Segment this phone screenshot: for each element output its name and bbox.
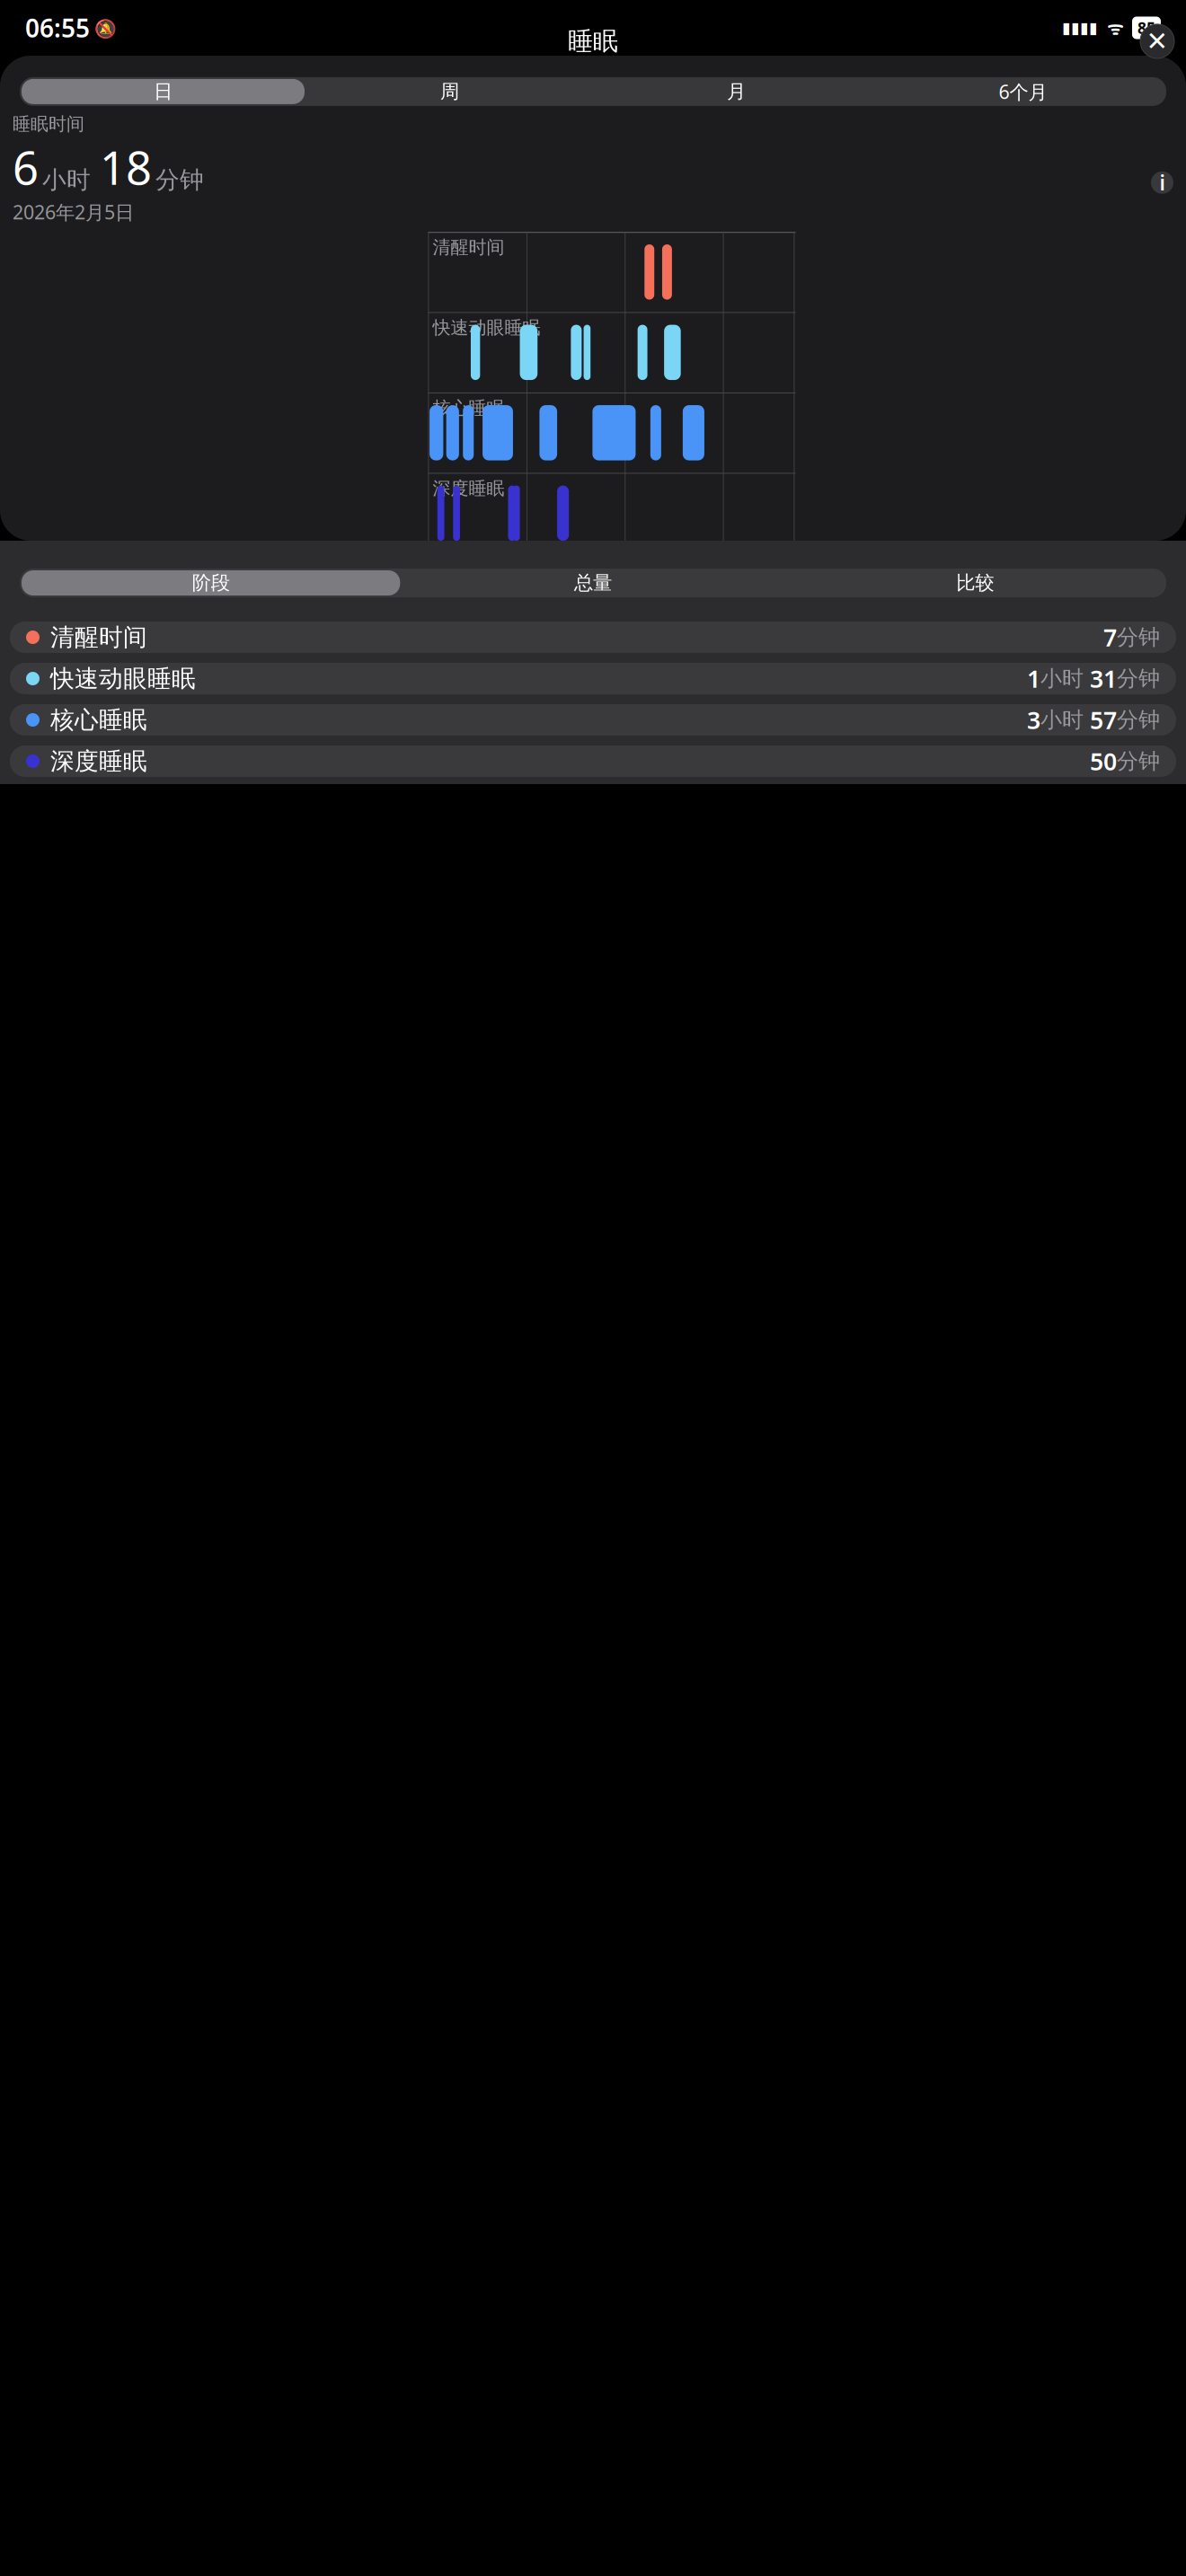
staticText: 6 [13,137,39,197]
staticText: 50 [1090,745,1117,777]
button[interactable]: 周 [306,77,593,106]
staticText: 3 [1027,704,1040,736]
staticText: 月 [727,80,746,103]
staticText: 清醒时间 [50,623,147,652]
staticText: 快速动眼睡眠 [433,317,540,339]
staticText: 比较 [956,571,994,595]
staticText: 深度睡眠 [50,746,147,776]
button[interactable]: 信息 [1151,171,1173,194]
staticText: 分钟 [155,165,204,195]
staticText: 06:55 [25,11,90,45]
staticText: 分钟 [1117,624,1160,651]
staticText: 阶段 [192,571,230,595]
staticText: 睡眠时间 [13,113,84,135]
button[interactable]: 月 [593,77,880,106]
staticText: 核心睡眠 [50,705,147,735]
button[interactable]: 深度睡眠 [10,745,1176,777]
staticText: i [1159,169,1165,196]
staticText: 6个月 [999,79,1047,104]
staticText: 清醒时间 [433,236,504,258]
staticText: 日 [154,80,173,103]
staticText: 小时 [1040,707,1090,733]
staticText: 2026年2月5日 [13,199,134,225]
staticText: 1 [1027,663,1040,694]
staticText: 02:00 [120,555,169,580]
staticText: 睡眠 [568,26,618,57]
staticText: 31 [1090,663,1117,694]
button[interactable]: 关闭 [1140,24,1174,58]
staticText: ✕ [1146,26,1168,56]
staticText: 06:00 [316,555,365,580]
button[interactable]: 总量 [402,569,784,597]
button[interactable]: 6个月 [880,77,1166,106]
staticText: 核心睡眠 [433,397,504,419]
button[interactable]: 阶段 [20,569,402,597]
staticText: 分钟 [1117,748,1160,775]
staticText: 快速动眼睡眠 [50,664,196,693]
button[interactable]: 快速动眼睡眠 [10,663,1176,694]
staticText: 04:00 [218,555,267,580]
staticText: 00:00 [22,555,71,580]
staticText: 深度睡眠 [433,477,504,500]
button[interactable]: 清醒时间 [10,622,1176,653]
staticText: 57 [1090,704,1117,736]
staticText: 周 [440,80,459,103]
staticText: ᯤ [1098,16,1132,40]
staticText: 分钟 [1117,665,1160,692]
staticText: 7 [1103,621,1117,653]
button[interactable]: 日 [20,77,306,106]
staticText: 🔕 [90,16,117,40]
staticText: 小时 [1040,665,1090,692]
button[interactable]: 核心睡眠 [10,704,1176,736]
staticText: ▮▮▮▮ [1062,19,1098,37]
button[interactable]: 比较 [784,569,1166,597]
staticText: 85 [1137,18,1155,38]
staticText: 总量 [574,571,612,595]
staticText: 18 [100,137,152,197]
staticText: 小时 [42,165,91,195]
staticText: 分钟 [1117,707,1160,733]
